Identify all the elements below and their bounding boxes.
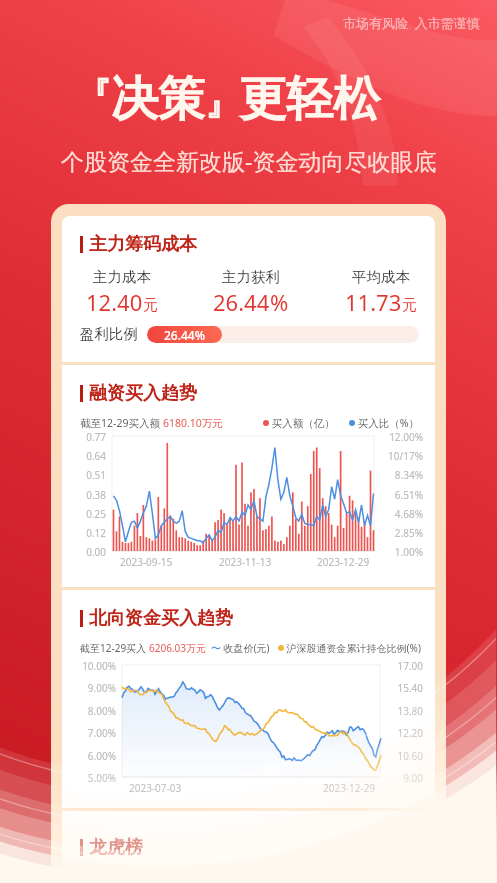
- staticText: 10/17%: [381, 449, 423, 463]
- staticText: 8.34%: [381, 468, 423, 482]
- staticText: 主力获利: [222, 268, 280, 286]
- staticText: 4.68%: [381, 507, 423, 521]
- staticText: 11.73: [345, 287, 402, 317]
- staticText: 『: [77, 74, 111, 117]
- staticText: 8.00%: [80, 704, 116, 718]
- staticText: 12.40: [86, 287, 143, 317]
- staticText: 元: [402, 296, 417, 315]
- staticText: 2023-12-29: [323, 781, 376, 795]
- staticText: 沪深股通资金累计持仓比例(%): [284, 641, 421, 655]
- staticText: 主力成本: [93, 268, 151, 286]
- button[interactable]: 主力筹码成本: [62, 216, 435, 362]
- staticText: 个股资金全新改版-资金动向尽收眼底: [61, 145, 437, 176]
- staticText: 2.85%: [381, 526, 423, 540]
- staticText: 盈利比例: [80, 325, 138, 343]
- staticText: 7.00%: [80, 726, 116, 740]
- staticText: 17.00: [387, 659, 423, 673]
- staticText: 截至12-29买入额: [80, 416, 163, 430]
- staticText: 平均成本: [352, 268, 410, 286]
- staticText: 〜: [211, 642, 221, 655]
- staticText: 2023-12-29: [317, 555, 370, 569]
- staticText: 龙虎榜: [89, 836, 143, 859]
- staticText: 13.80: [387, 704, 423, 718]
- staticText: 0.77: [80, 430, 106, 444]
- staticText: 6.00%: [80, 749, 116, 763]
- button[interactable]: 龙虎榜: [62, 811, 435, 883]
- staticText: 截至12-29买入: [80, 641, 149, 655]
- staticText: 0.00: [80, 545, 106, 559]
- staticText: 』: [205, 82, 239, 125]
- staticText: 5.00%: [80, 771, 116, 785]
- staticText: 融资买入趋势: [89, 382, 197, 405]
- staticText: 6180.10万元: [163, 416, 223, 430]
- staticText: 26.44%: [164, 327, 205, 343]
- staticText: 0.38: [80, 488, 106, 502]
- staticText: 2023-07-03: [129, 781, 182, 795]
- staticText: 2023-11-13: [219, 555, 272, 569]
- staticText: 10.60: [387, 749, 423, 763]
- staticText: 决策: [111, 70, 205, 129]
- staticText: 12.00%: [381, 430, 423, 444]
- staticText: 市场有风险 入市需谨慎: [343, 14, 480, 32]
- staticText: 9.00: [387, 771, 423, 785]
- staticText: 12.20: [387, 726, 423, 740]
- staticText: 更轻松: [239, 70, 380, 129]
- staticText: 2023-09-15: [120, 555, 173, 569]
- staticText: 买入比（%）: [355, 416, 419, 430]
- staticText: %: [270, 287, 289, 317]
- staticText: 北向资金买入趋势: [89, 607, 233, 630]
- staticText: 买入额（亿）: [269, 416, 335, 430]
- staticText: 元: [143, 296, 158, 315]
- staticText: 0.64: [80, 449, 106, 463]
- staticText: 收盘价(元): [221, 641, 270, 655]
- staticText: 15.40: [387, 681, 423, 695]
- staticText: 主力筹码成本: [89, 233, 197, 256]
- button[interactable]: 融资买入趋势: [62, 365, 435, 587]
- staticText: 0.51: [80, 468, 106, 482]
- staticText: 6206.03万元: [149, 641, 206, 655]
- staticText: 0.12: [80, 526, 106, 540]
- staticText: 1.00%: [381, 545, 423, 559]
- staticText: 6.51%: [381, 488, 423, 502]
- staticText: 0.25: [80, 507, 106, 521]
- staticText: 10.00%: [80, 659, 116, 673]
- staticText: 9.00%: [80, 681, 116, 695]
- button[interactable]: 北向资金买入趋势: [62, 590, 435, 808]
- staticText: 26.44: [213, 287, 270, 317]
